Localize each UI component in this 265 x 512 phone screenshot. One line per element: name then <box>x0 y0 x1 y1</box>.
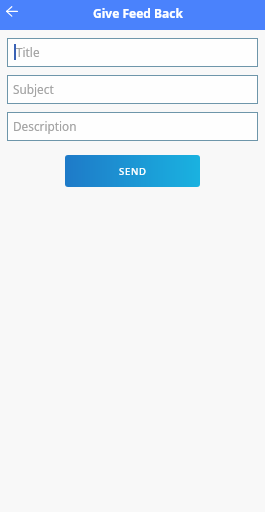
staticText: Subject <box>13 81 54 97</box>
button[interactable]: SEND <box>65 155 200 187</box>
staticText: SEND <box>119 165 147 178</box>
staticText: Title <box>16 44 40 60</box>
button[interactable]: Back <box>0 0 24 24</box>
button[interactable]: Description <box>7 112 258 141</box>
staticText: Give Feed Back <box>93 5 183 21</box>
button[interactable]: Subject <box>7 75 258 104</box>
staticText: Description <box>13 118 77 134</box>
button[interactable]: Title <box>7 38 258 67</box>
